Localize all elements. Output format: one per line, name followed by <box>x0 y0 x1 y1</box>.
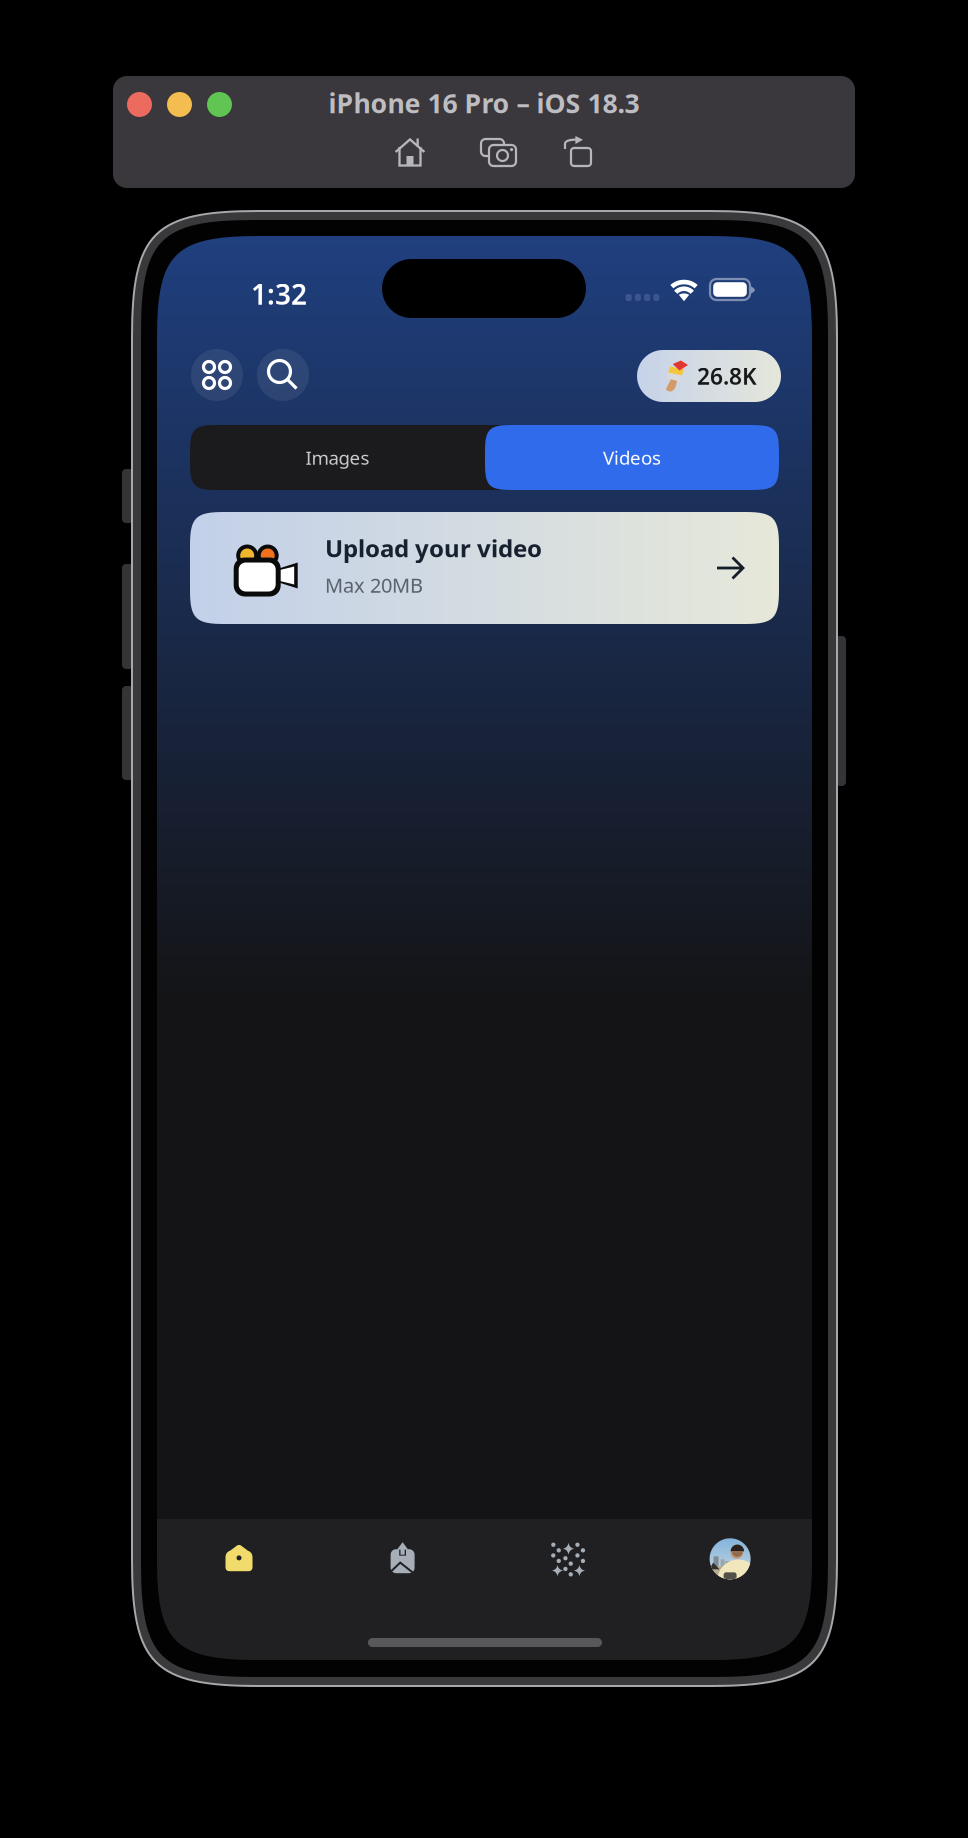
staticText: Upload your video <box>325 532 542 564</box>
button[interactable]: Images <box>190 425 779 490</box>
button[interactable]: Upload your video <box>157 236 812 1660</box>
staticText: Videos <box>603 445 661 470</box>
button[interactable]: Close <box>0 0 968 1838</box>
button[interactable]: 26.8K <box>157 236 812 1660</box>
staticText: 1:32 <box>251 275 307 313</box>
button[interactable]: Minimise <box>0 0 968 1838</box>
button[interactable]: Categories <box>157 236 812 1660</box>
staticText: iPhone 16 Pro – iOS 18.3 <box>328 85 639 121</box>
staticText: Images <box>305 445 369 470</box>
button[interactable]: Upload <box>157 236 812 1660</box>
staticText: Max 20MB <box>325 572 423 598</box>
staticText: 26.8K <box>697 361 757 391</box>
button[interactable]: Effects <box>157 236 812 1660</box>
button[interactable]: Screenshot <box>0 0 968 1838</box>
button[interactable]: Home <box>157 236 812 1660</box>
button[interactable]: Videos <box>190 425 779 490</box>
button[interactable]: Zoom <box>0 0 968 1838</box>
button[interactable]: Home <box>0 0 968 1838</box>
button[interactable]: Search <box>157 236 812 1660</box>
button[interactable]: Rotate <box>0 0 968 1838</box>
button[interactable]: Profile <box>157 236 812 1660</box>
